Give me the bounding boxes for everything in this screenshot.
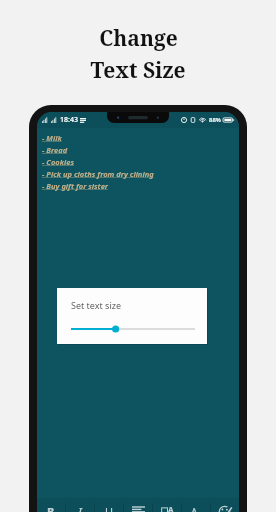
staticText: U xyxy=(105,504,114,512)
button[interactable]: Italic xyxy=(66,498,94,512)
button[interactable]: Bold xyxy=(37,498,65,512)
staticText: B xyxy=(47,504,55,512)
staticText: A xyxy=(168,504,174,512)
staticText: I xyxy=(78,504,83,512)
button[interactable]: Underline xyxy=(95,498,123,512)
button[interactable] xyxy=(71,323,195,335)
staticText: 18:43 xyxy=(60,115,78,125)
staticText: - Cookies xyxy=(42,157,74,167)
staticText: 88% xyxy=(209,116,221,124)
staticText: Text Size xyxy=(90,56,186,85)
staticText: - Bread xyxy=(42,145,68,155)
staticText: Change xyxy=(99,24,178,53)
button[interactable]: Align text xyxy=(124,498,152,512)
button[interactable]: Text size xyxy=(182,498,210,512)
staticText: - Buy gift for sister xyxy=(42,181,109,191)
staticText: - Milk xyxy=(42,133,62,143)
button[interactable]: Text color xyxy=(211,498,239,512)
staticText: - Pick up cloths from dry clining xyxy=(42,169,154,179)
staticText: Set text size xyxy=(71,299,122,311)
staticText: A xyxy=(191,505,198,512)
button[interactable]: Set text size xyxy=(57,288,207,344)
button[interactable]: Font xyxy=(153,498,181,512)
